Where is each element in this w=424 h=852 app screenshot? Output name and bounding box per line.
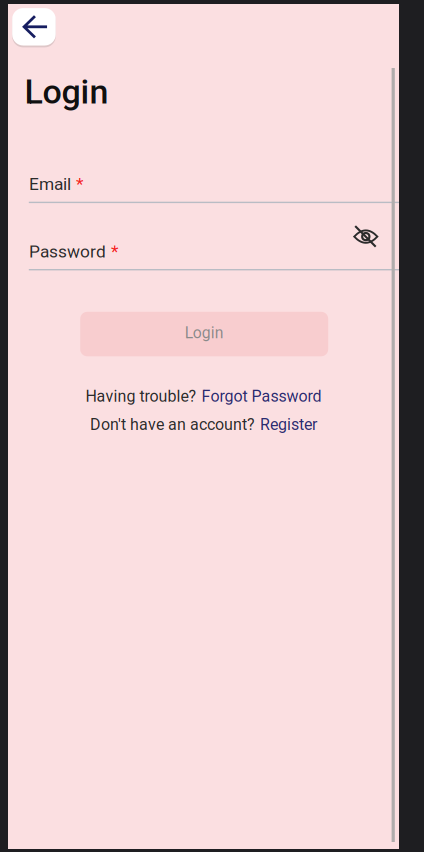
staticText: Forgot Password — [201, 387, 321, 406]
button[interactable]: Forgot Password — [201, 387, 321, 406]
staticText: * — [76, 174, 83, 194]
button[interactable]: Back — [12, 8, 56, 45]
staticText: Having trouble? — [85, 387, 196, 406]
staticText: Don't have an account? — [90, 415, 255, 434]
staticText: Login — [185, 324, 224, 342]
button[interactable]: Show password — [353, 224, 379, 249]
button[interactable]: Login — [80, 312, 328, 356]
staticText: * — [111, 241, 118, 262]
button[interactable]: Register — [260, 415, 317, 434]
staticText: Password — [29, 241, 106, 262]
staticText: Email — [29, 174, 71, 194]
staticText: Register — [260, 415, 317, 434]
staticText: Login — [24, 72, 108, 112]
